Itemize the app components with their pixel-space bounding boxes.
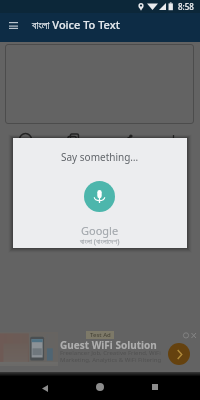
button[interactable]: Save text [163,130,183,150]
button[interactable]: Home [89,376,111,398]
button[interactable]: Clear text [15,129,35,149]
button[interactable]: Ad info [183,332,197,339]
staticText: বাংলা (বাংলাদেশ) [80,236,120,246]
staticText: বাংলা Voice To Text [32,17,120,32]
button[interactable]: Open ad [168,343,190,365]
button[interactable]: Open navigation menu [3,15,23,35]
staticText: Test Ad [90,331,111,339]
staticText: Google [81,223,119,238]
staticText: Guest WiFi Solution [60,338,157,352]
button[interactable]: Copy text [63,128,83,148]
staticText: 8:58 [178,1,194,12]
staticText: Say something… [61,150,139,164]
staticText: Freelancer Job, Creative Friend, WiFi Ma… [60,349,162,364]
button[interactable]: Start voice input [84,181,115,212]
button[interactable]: Recent apps [144,376,166,398]
button[interactable]: Share text [117,130,137,150]
button[interactable]: Back [34,377,56,399]
